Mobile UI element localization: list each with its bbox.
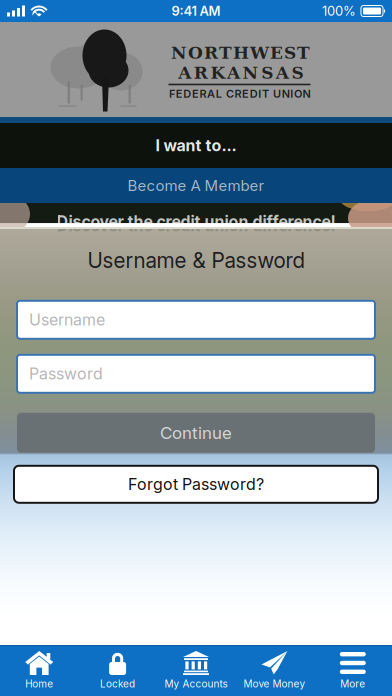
staticText: 9:41 AM [171,3,220,19]
button[interactable]: Username [0,301,392,339]
staticText: Home [25,678,53,690]
staticText: Forgot Password? [128,475,264,494]
button[interactable]: I want to... [0,123,392,168]
staticText: Discover the credit union difference! [56,216,335,235]
button[interactable]: Continue [0,413,392,453]
staticText: More [340,678,365,690]
staticText: Move Money [243,678,305,690]
staticText: Username [29,310,105,329]
staticText: ARKANSAS [177,63,302,83]
button[interactable]: Move Money [235,651,314,690]
staticText: NORTHWEST [170,43,309,63]
staticText: FEDERAL CREDIT UNION [169,87,310,100]
staticText: My Accounts [164,678,227,690]
staticText: Continue [160,423,232,443]
staticText: 100% [322,3,356,19]
button[interactable]: Password [0,355,392,393]
staticText: Locked [100,678,135,690]
staticText: Username & Password [87,248,304,273]
staticText: Become A Member [127,177,264,194]
staticText: I want to... [155,136,236,155]
staticText: Password [29,364,103,383]
button[interactable]: More [314,651,392,690]
button[interactable]: Home [0,651,78,690]
staticText: Discover the credit union difference! [56,212,335,231]
button[interactable]: Forgot Password? [0,466,392,503]
button[interactable]: Become A Member [0,168,392,203]
button[interactable]: My Accounts [157,651,235,690]
button[interactable]: Locked [78,651,157,690]
